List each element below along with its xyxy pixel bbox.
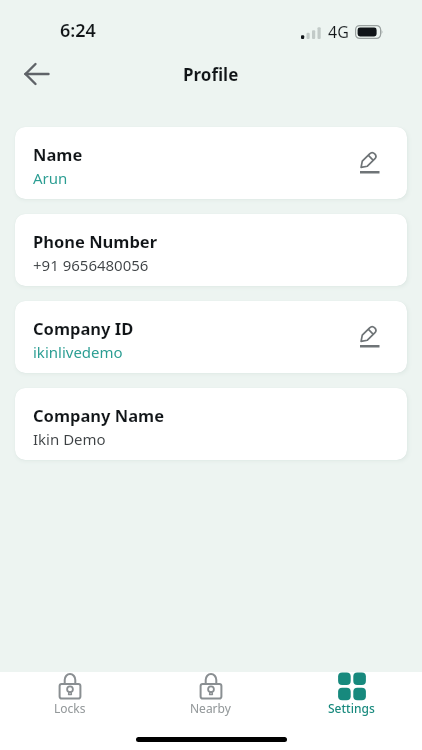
staticText: Locks [54, 700, 86, 716]
staticText: ikinlivedemo [33, 342, 123, 362]
staticText: Settings [328, 700, 375, 716]
staticText: Arun [33, 168, 68, 188]
staticText: Profile [183, 63, 239, 86]
button[interactable]: Settings [281, 672, 422, 750]
staticText: Nearby [190, 700, 231, 716]
staticText: Name [33, 143, 83, 165]
staticText: Ikin Demo [33, 429, 106, 449]
button[interactable] [357, 150, 383, 176]
button[interactable]: Name [15, 127, 407, 199]
button[interactable]: Locks [0, 672, 140, 750]
button[interactable]: Nearby [140, 672, 281, 750]
staticText: Company ID [33, 317, 134, 339]
staticText: 4G [328, 21, 349, 43]
staticText: +91 9656480056 [33, 255, 149, 275]
button[interactable] [24, 61, 50, 87]
staticText: 6:24 [60, 18, 96, 43]
staticText: Company Name [33, 404, 164, 426]
button[interactable]: Company Name [15, 388, 407, 460]
button[interactable] [357, 324, 383, 350]
staticText: Phone Number [33, 230, 158, 252]
button[interactable]: Company ID [15, 301, 407, 373]
button[interactable]: Phone Number [15, 214, 407, 286]
